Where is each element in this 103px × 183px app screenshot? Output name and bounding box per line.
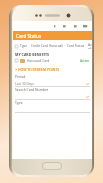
staticText: HOW TO REDEEM POINTS [18, 67, 60, 72]
button[interactable]: HOW TO REDEEM POINTS [13, 66, 92, 72]
staticText: Available [88, 43, 92, 49]
staticText: Type [15, 100, 23, 105]
button[interactable] [15, 94, 90, 99]
staticText: Active [80, 59, 89, 63]
staticText: Type [20, 44, 28, 48]
staticText: Credit Card Harusuali [31, 44, 64, 48]
staticText: Last 30 Days [15, 82, 34, 86]
staticText: Card Status [16, 33, 42, 39]
staticText: Period [15, 74, 26, 79]
staticText: MY CARD BENEFITS [15, 52, 50, 57]
other: Home [42, 162, 62, 170]
staticText: Card Status [67, 44, 85, 48]
button[interactable]: Last 30 Days [15, 81, 90, 86]
button[interactable]: Card Status [13, 31, 92, 40]
staticText: Search Card Number [15, 87, 49, 92]
button[interactable]: Harusuali Card [13, 57, 92, 64]
staticText: Harusuali Card [27, 59, 50, 63]
